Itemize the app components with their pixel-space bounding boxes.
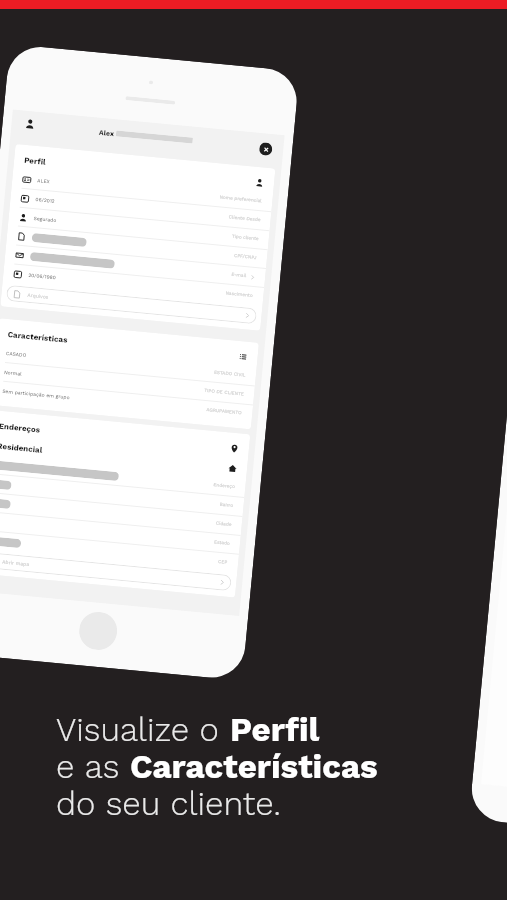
staticText: Perfil	[24, 156, 46, 167]
button[interactable]: CEP	[0, 531, 229, 572]
button[interactable]: Conta	[24, 118, 36, 130]
button[interactable]: 20/06/1980	[13, 264, 254, 305]
staticText: CPF/CNPJ	[234, 253, 257, 261]
button[interactable]: ALEX	[21, 170, 263, 210]
button[interactable]: Normal	[3, 363, 245, 403]
button[interactable]: Abrir mapa	[0, 552, 232, 591]
staticText: Tipo cliente	[232, 234, 259, 242]
staticText: Endereço	[213, 482, 236, 490]
button[interactable]: CPF/CNPJ	[16, 226, 258, 267]
button[interactable]: Estado	[0, 512, 231, 553]
button[interactable]: Bairro	[0, 474, 234, 515]
staticText: e as	[56, 747, 130, 786]
staticText: Sem participação em grupo	[2, 388, 70, 400]
button[interactable]: E-mail	[14, 245, 256, 286]
staticText: Alex	[99, 128, 115, 137]
staticText: Residencial	[0, 442, 43, 455]
staticText: Bairro	[219, 502, 234, 509]
staticText: Arquivos	[27, 292, 50, 300]
button[interactable]: Arquivos	[6, 285, 257, 324]
staticText: Cliente Desde	[228, 214, 261, 223]
other: Residencial	[228, 463, 237, 473]
staticText: Abrir mapa	[2, 559, 29, 567]
staticText: Características	[7, 330, 69, 345]
other: Características	[238, 352, 248, 362]
staticText: Visualize o	[56, 710, 230, 749]
button[interactable]: CASADO	[5, 344, 247, 385]
button[interactable]: 06/2012	[20, 189, 261, 229]
staticText: Cidade	[215, 520, 232, 528]
staticText: Nascimento	[225, 290, 254, 299]
other: Endereços	[229, 443, 239, 453]
staticText: E-mail	[231, 272, 246, 279]
staticText: ESTADO CIVIL	[214, 370, 246, 379]
button[interactable]: Sem participação em grupo	[1, 382, 243, 422]
staticText: Nome preferencial	[219, 194, 263, 204]
staticText: Endereços	[0, 422, 41, 435]
staticText: TIPO DE CLIENTE	[204, 388, 244, 397]
button[interactable]: Segurado	[18, 208, 259, 248]
button[interactable]: Fechar	[259, 142, 273, 156]
staticText: AGRUPAMENTO	[206, 407, 242, 416]
staticText: 06/2012	[35, 196, 56, 204]
staticText: Características	[130, 747, 378, 786]
button[interactable]: Endereço	[0, 455, 236, 496]
other: Home	[77, 610, 119, 652]
button[interactable]: Cidade	[0, 493, 232, 534]
staticText: ALEX	[37, 177, 50, 184]
staticText: do seu cliente.	[56, 784, 281, 823]
staticText: Perfil	[230, 710, 320, 749]
other: Perfil	[255, 178, 264, 187]
staticText: CEP	[218, 559, 228, 566]
staticText: Normal	[4, 369, 22, 377]
staticText: Segurado	[33, 215, 57, 223]
staticText: CASADO	[6, 350, 27, 358]
staticText: 20/06/1980	[28, 272, 56, 280]
staticText: Estado	[214, 539, 230, 547]
